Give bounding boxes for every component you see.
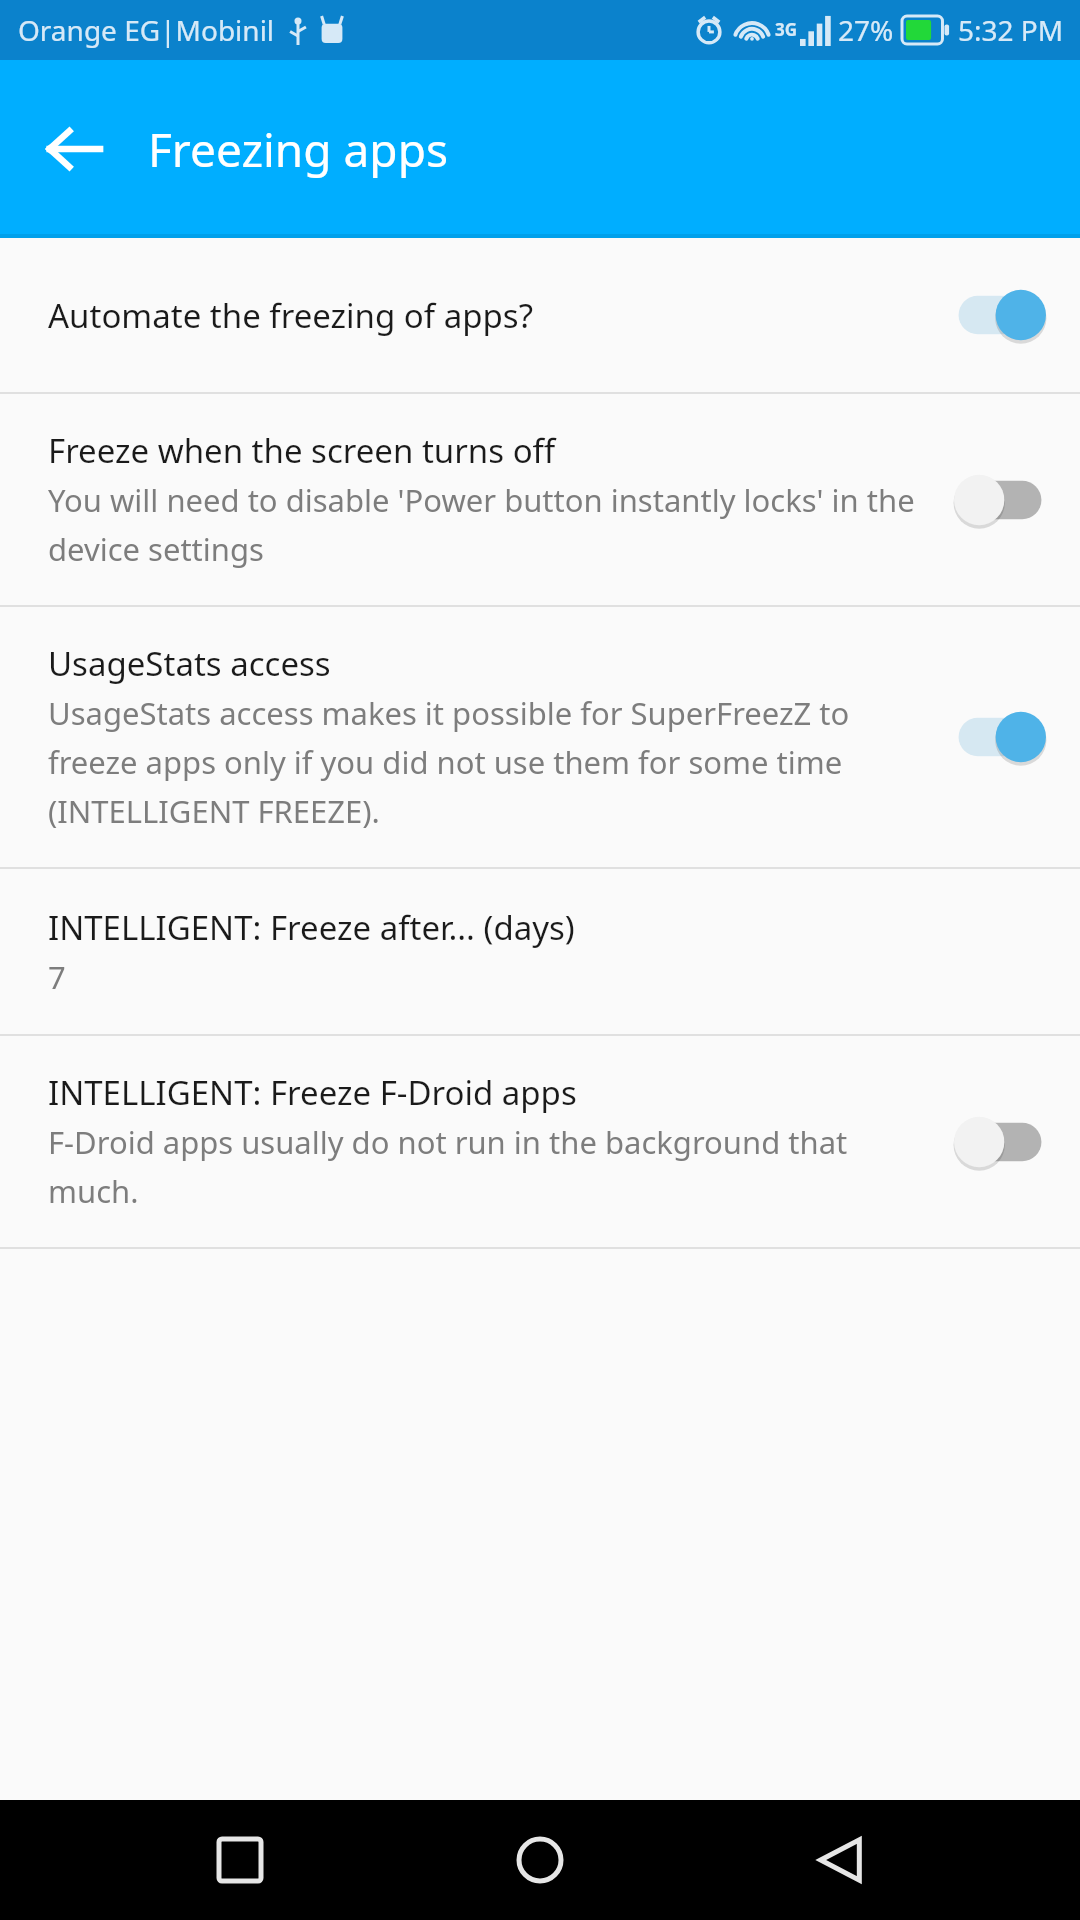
staticText: 3G bbox=[775, 18, 798, 41]
button[interactable]: Toggle on bbox=[944, 278, 1056, 352]
staticText: You will need to disable 'Power button i… bbox=[48, 479, 928, 571]
button[interactable]: Freeze when the screen turns off bbox=[0, 394, 1080, 605]
staticText: Freeze when the screen turns off bbox=[48, 428, 556, 473]
staticText: 27% bbox=[838, 11, 894, 49]
staticText: Freezing apps bbox=[148, 118, 448, 181]
staticText: F-Droid apps usually do not run in the b… bbox=[48, 1121, 928, 1213]
staticText: INTELLIGENT: Freeze after... (days) bbox=[48, 905, 575, 950]
staticText: 7 bbox=[48, 956, 66, 998]
staticText: INTELLIGENT: Freeze F-Droid apps bbox=[48, 1070, 577, 1115]
button[interactable]: Back bbox=[780, 1800, 900, 1920]
button[interactable]: INTELLIGENT: Freeze F-Droid apps bbox=[0, 1036, 1080, 1247]
button[interactable]: Automate the freezing of apps? bbox=[0, 238, 1080, 392]
button[interactable]: Toggle on bbox=[944, 700, 1056, 774]
button[interactable]: Toggle off bbox=[944, 1105, 1056, 1179]
staticText: UsageStats access makes it possible for … bbox=[48, 692, 928, 833]
button[interactable]: UsageStats access bbox=[0, 607, 1080, 867]
staticText: 5:32 PM bbox=[958, 11, 1064, 49]
button[interactable]: Recent apps bbox=[180, 1800, 300, 1920]
staticText: Orange EG|Mobinil bbox=[18, 11, 275, 49]
staticText: UsageStats access bbox=[48, 641, 331, 686]
staticText: Automate the freezing of apps? bbox=[48, 293, 533, 338]
button[interactable]: Home bbox=[480, 1800, 600, 1920]
button[interactable]: Back bbox=[26, 101, 122, 197]
button[interactable]: INTELLIGENT: Freeze after... (days) bbox=[0, 869, 1080, 1034]
button[interactable]: Toggle off bbox=[944, 463, 1056, 537]
